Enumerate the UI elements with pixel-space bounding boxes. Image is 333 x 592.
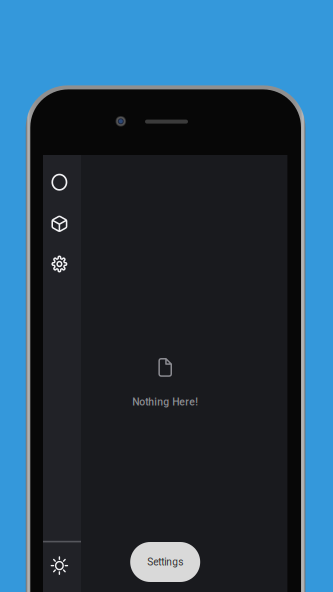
button[interactable]: Settings bbox=[43, 250, 76, 278]
button[interactable]: Record bbox=[43, 168, 76, 196]
staticText: Settings bbox=[147, 556, 183, 568]
button[interactable]: Objects bbox=[43, 210, 76, 238]
button[interactable]: Brightness bbox=[43, 552, 76, 580]
button[interactable]: Settings bbox=[130, 542, 200, 582]
staticText: Nothing Here! bbox=[132, 396, 198, 408]
